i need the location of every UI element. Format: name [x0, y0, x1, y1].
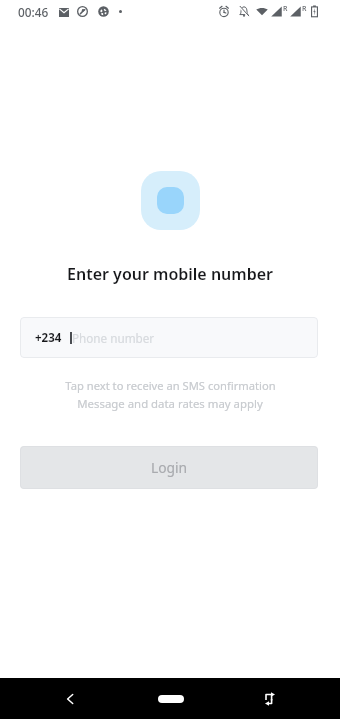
staticText: Message and data rates may apply [77, 396, 263, 412]
button[interactable]: Login [20, 446, 318, 489]
button[interactable]: Rotate screen [256, 685, 284, 713]
staticText: Phone number [72, 330, 155, 346]
staticText: +234 [35, 330, 62, 346]
staticText: R [302, 4, 307, 14]
staticText: Enter your mobile number [67, 263, 273, 285]
staticText: Login [151, 458, 188, 477]
staticText: Tap next to receive an SMS confirmation [65, 378, 276, 393]
staticText: 00:46 [18, 4, 49, 20]
button[interactable]: Home [141, 686, 201, 712]
button[interactable]: Back [56, 685, 84, 713]
staticText: R [283, 4, 288, 14]
button[interactable]: +234 [20, 317, 318, 358]
